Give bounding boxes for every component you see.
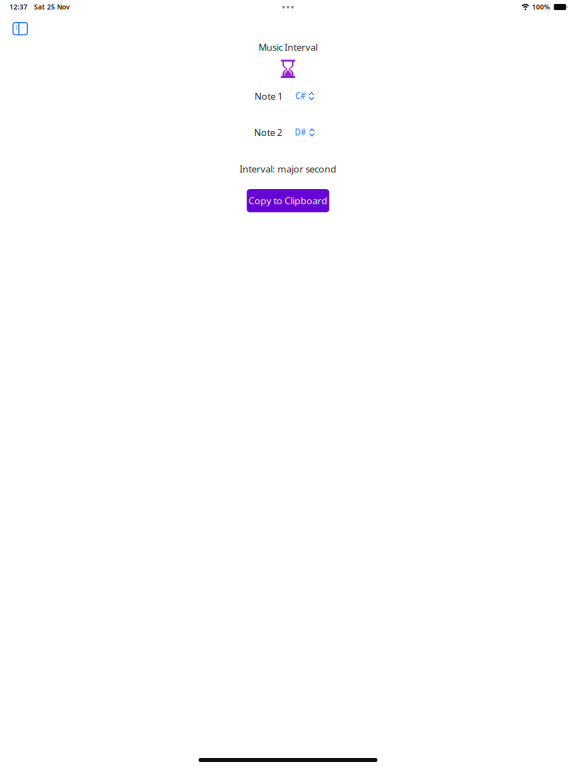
staticText: D# — [295, 127, 306, 138]
button[interactable]: Show sidebar — [6, 14, 34, 38]
staticText: Music Interval — [258, 41, 317, 53]
staticText: C# — [295, 91, 305, 101]
button[interactable]: Note 1, C# — [295, 90, 321, 102]
staticText: Note 2 — [254, 126, 282, 139]
staticText: 100% — [532, 3, 550, 11]
staticText: Note 1 — [255, 90, 283, 102]
button[interactable]: Copy to Clipboard — [247, 189, 329, 212]
button[interactable]: Note 2, D# — [295, 126, 322, 138]
staticText: Copy to Clipboard — [248, 194, 327, 207]
staticText: Interval: major second — [239, 163, 336, 175]
staticText: Sat 25 Nov — [34, 3, 70, 11]
staticText: 12:37 — [9, 3, 27, 11]
